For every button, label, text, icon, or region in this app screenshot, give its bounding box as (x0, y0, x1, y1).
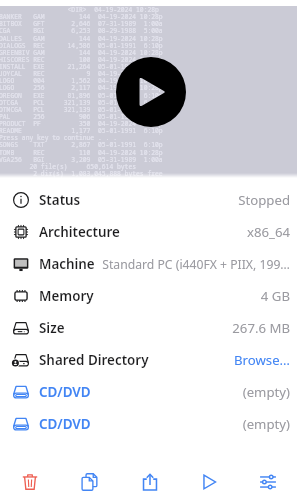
staticText: PAL 256 906 05-01-1991 6:10p (0, 112, 163, 121)
staticText: Press any key to continue . . . (0, 133, 117, 142)
staticText: OTCGA PCL 321,139 05-01-1991 6:10p (0, 98, 163, 107)
button[interactable]: Duplicate (60, 466, 120, 497)
button[interactable]: Memory (0, 280, 297, 312)
staticText: LOGO 256 2,117 04-19-2024 10:28p (0, 83, 163, 92)
button[interactable]: CD/DVD (0, 408, 297, 440)
staticText: Browse… (155, 351, 290, 369)
staticText: TOMB REC 110 04-19-2024 10:28p (0, 148, 163, 157)
staticText: PRODUCT PF 350 04-19-2024 10:28p (0, 119, 163, 128)
staticText: Architecture (39, 223, 120, 241)
staticText: OTMCGA PCL 321,139 05-01-1991 6:10p (0, 105, 163, 114)
button[interactable]: Machine (0, 248, 297, 280)
staticText: DALLES GAM 144 04-19-2024 10:28p (0, 34, 163, 43)
staticText: VGA256 BGI 3,209 05-31-1989 1:00a (0, 155, 163, 164)
staticText: BANKER GAM 144 04-19-2024 10:28p (0, 12, 163, 21)
staticText: Shared Directory (39, 351, 149, 369)
button[interactable]: Shared Directory (0, 344, 297, 376)
staticText: <DIR> 04-19-2024 10:28p (0, 6, 159, 14)
button[interactable]: Run (179, 466, 238, 497)
staticText: INSTALL EXE 21,264 05-01-1991 6:10p (0, 62, 163, 71)
button[interactable]: CD/DVD (0, 376, 297, 408)
button[interactable]: Size (0, 312, 297, 344)
staticText: (empty) (97, 415, 290, 433)
staticText: LOGO 004 1,562 04-19-2024 10:28p (0, 76, 163, 85)
staticText: 4 GB (100, 287, 290, 305)
staticText: Machine (39, 255, 95, 273)
staticText: JOYCAL REC 9 04-19-2024 10:28p (0, 69, 163, 78)
staticText: 2 dir(s) 1,083,045,888 bytes free (0, 169, 163, 178)
staticText: Standard PC (i440FX + PIIX, 199… (101, 256, 290, 273)
staticText: C:\OTRAIL>ore_ (0, 176, 53, 178)
staticText: README 1,177 05-01-1991 6:10p (0, 126, 163, 135)
staticText: 267.6 MB (71, 319, 290, 337)
staticText: (empty) (97, 383, 290, 401)
staticText: HISCORES REC 100 04-19-2024 10:28p (0, 55, 163, 64)
button[interactable]: Start VM (116, 57, 186, 127)
button[interactable]: Delete (0, 466, 60, 497)
staticText: OREGON EXE 81,896 05-01-1991 6:10p (0, 91, 163, 100)
staticText: Stopped (87, 191, 290, 209)
staticText: Size (39, 319, 65, 337)
staticText: Status (39, 191, 81, 209)
staticText: x86_64 (126, 223, 290, 241)
staticText: CGA BGI 6,253 08-29-1988 5:00a (0, 26, 163, 35)
staticText: 20 file(s) 650,614 bytes (0, 162, 137, 171)
button[interactable]: Status (0, 184, 297, 216)
staticText: GREENBIV GAM 144 04-19-2024 10:28p (0, 48, 163, 57)
staticText: Memory (39, 287, 94, 305)
button[interactable]: Share (120, 466, 179, 497)
staticText: SONGS TXT 2,867 05-01-1991 6:10p (0, 140, 163, 149)
staticText: DIALOGS REC 14,586 05-01-1991 6:10p (0, 41, 163, 50)
staticText: CD/DVD (39, 383, 91, 401)
button[interactable]: Architecture (0, 216, 297, 248)
staticText: CD/DVD (39, 415, 91, 433)
button[interactable]: Settings (238, 466, 297, 497)
staticText: BITBOX GFT 2,646 07-31-1989 1:00a (0, 19, 163, 28)
